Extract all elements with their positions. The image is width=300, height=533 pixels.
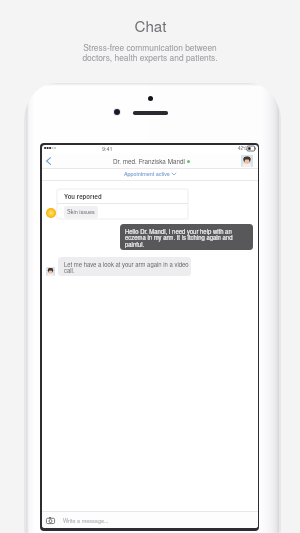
button[interactable]: Let me have a look at your arm again in …	[58, 257, 191, 276]
button[interactable]: You reported	[57, 189, 188, 219]
button[interactable]: Take a photo	[44, 515, 57, 526]
button[interactable]: Hello Dr. Mandl, I need your help with a…	[120, 224, 253, 250]
staticText: Let me have a look at your arm again in …	[64, 260, 189, 275]
staticText: 9:41	[102, 145, 113, 153]
staticText: Dr. med. Franziska Mandl	[113, 157, 185, 166]
button[interactable]: Doctor profile photo	[241, 155, 253, 167]
staticText: Write a message...	[63, 517, 109, 525]
staticText: Hello Dr. Mandl, I need your help with a…	[125, 227, 233, 249]
staticText: You reported	[64, 192, 102, 201]
button[interactable]: Appointment active	[42, 168, 258, 179]
staticText: Chat	[134, 15, 167, 37]
staticText: Appointment active	[124, 170, 170, 178]
button[interactable]: Back	[42, 154, 55, 168]
staticText: 42%	[238, 145, 248, 152]
staticText: Stress-free communication between doctor…	[82, 41, 218, 63]
staticText: Skin issues	[67, 208, 95, 216]
